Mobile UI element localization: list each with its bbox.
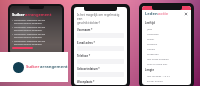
staticText: Senior: [147, 37, 155, 40]
staticText: eiusmod tempor incididunt: [14, 29, 42, 32]
staticText: Suiker: [26, 64, 40, 70]
staticText: •: [12, 33, 13, 36]
button[interactable]: Tieners: [142, 46, 191, 51]
button[interactable]: Kinderen: [142, 41, 191, 46]
staticText: Volwassen: [147, 32, 159, 35]
staticText: consectetur adipiscing elit sed: [14, 40, 46, 43]
staticText: eiusmod tempor incididunt: [14, 43, 42, 46]
staticText: Stap of kleine met: [147, 62, 168, 65]
staticText: E-mail adres *: [77, 41, 95, 45]
staticText: Lengte: [145, 68, 154, 72]
staticText: Tieners: [147, 47, 156, 50]
staticText: Geboortedatum *: [77, 67, 100, 71]
button[interactable]: Met jonge kinderen: [142, 56, 191, 61]
staticText: Met jonge kinderen: [147, 57, 169, 60]
staticText: Woonplaats *: [77, 80, 95, 84]
button[interactable]: Met op kwartaal: [142, 83, 191, 85]
staticText: consectetur adipiscing elit sed: [14, 19, 46, 22]
staticText: Jong: [147, 27, 153, 30]
staticText: Is het mogelijk om regelmatig een geschi…: [77, 13, 124, 25]
staticText: actie: [158, 11, 169, 17]
staticText: Telefoon *: [77, 54, 91, 58]
staticText: Met de week - 10 x 2: [147, 74, 170, 77]
staticText: Leeftijd: [145, 21, 155, 25]
staticText: eiusmod tempor incididunt: [14, 36, 42, 39]
staticText: consectetur adipiscing elit sed: [14, 26, 46, 29]
button[interactable]: Met de week - 10 x 2: [142, 73, 191, 78]
button[interactable]: Jong: [142, 26, 191, 31]
button[interactable]: Studenten: [142, 51, 191, 56]
button[interactable]: Elf per minuut: [142, 78, 191, 83]
staticText: consectetur adipiscing elit sed: [14, 33, 46, 36]
button[interactable]: Volwassen: [142, 31, 191, 36]
button[interactable]: Senior: [142, 36, 191, 41]
staticText: Leden: [145, 11, 158, 17]
staticText: •: [12, 19, 13, 22]
button[interactable]: Stap of kleine met: [142, 61, 191, 66]
button[interactable]: Sluiten: [184, 12, 188, 16]
staticText: Studenten: [147, 52, 159, 55]
staticText: •: [12, 26, 13, 29]
staticText: eiusmod tempor incididunt: [14, 22, 42, 25]
button[interactable]: Aanmelden: [12, 47, 33, 49]
staticText: •: [12, 40, 13, 43]
staticText: arrangement: [25, 12, 52, 17]
staticText: Voornaam *: [77, 28, 93, 32]
staticText: Kinderen: [147, 42, 158, 45]
staticText: Suiker: [12, 12, 25, 17]
staticText: arrangement: [40, 64, 68, 70]
staticText: Elf per minuut: [147, 79, 163, 82]
